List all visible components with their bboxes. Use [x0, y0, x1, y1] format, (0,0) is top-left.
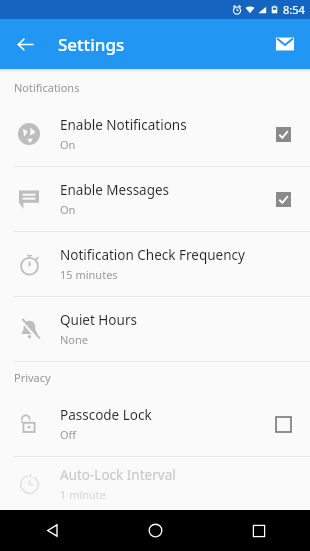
button[interactable]: Back	[8, 27, 42, 61]
button[interactable]: Enable Notifications	[0, 102, 310, 167]
staticText: 15 minutes	[60, 267, 118, 282]
button[interactable]: Recents	[207, 510, 310, 551]
staticText: Notifications	[14, 80, 80, 95]
staticText: None	[60, 332, 89, 347]
button[interactable]: Home	[104, 510, 207, 551]
staticText: Quiet Hours	[60, 311, 137, 329]
staticText: Notification Check Frequency	[60, 246, 245, 264]
button[interactable]: Mail	[268, 27, 302, 61]
staticText: Auto-Lock Interval	[60, 466, 176, 484]
staticText: 8:54	[283, 2, 305, 17]
staticText: Enable Messages	[60, 181, 170, 199]
button[interactable]: Auto-Lock Interval	[0, 457, 310, 510]
staticText: Enable Notifications	[60, 116, 187, 134]
staticText: On	[60, 202, 76, 217]
staticText: 1 minute	[60, 487, 107, 502]
staticText: On	[60, 137, 76, 152]
button[interactable]: Notification Check Frequency	[0, 232, 310, 297]
staticText: Settings	[58, 33, 125, 56]
staticText: Passcode Lock	[60, 406, 152, 424]
button[interactable]: Enable Messages	[0, 167, 310, 232]
button[interactable]: Quiet Hours	[0, 297, 310, 362]
staticText: Privacy	[14, 370, 51, 385]
button[interactable]: Passcode Lock	[0, 392, 310, 457]
button[interactable]: Back	[0, 510, 104, 551]
staticText: Off	[60, 427, 77, 442]
